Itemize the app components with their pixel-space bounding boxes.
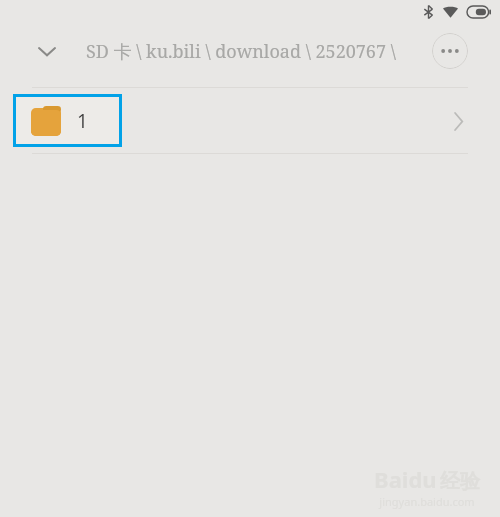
button[interactable]: Collapse: [28, 32, 66, 70]
button[interactable]: SD 卡 \ ku.bili \ download \ 2520767 \: [86, 39, 396, 64]
button[interactable]: More options: [432, 33, 468, 69]
staticText: 经验: [440, 469, 480, 494]
staticText: SD 卡 \ ku.bili \ download \ 2520767 \: [86, 39, 396, 64]
staticText: jingyan.baidu.com: [368, 494, 486, 509]
button[interactable]: Open folder: [438, 101, 478, 141]
button[interactable]: 1: [0, 88, 500, 153]
staticText: 1: [77, 108, 88, 134]
staticText: Baidu: [374, 464, 437, 494]
